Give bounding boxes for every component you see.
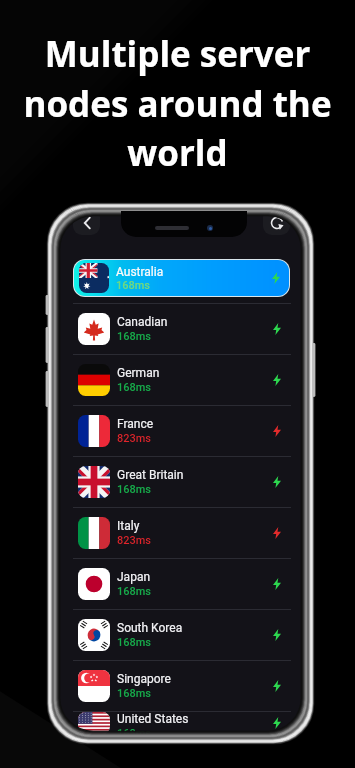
- staticText: Australia: [116, 265, 164, 279]
- staticText: 168ms: [117, 687, 152, 700]
- staticText: German: [117, 366, 160, 380]
- button[interactable]: Canadian: [60, 304, 301, 354]
- staticText: Japan: [117, 570, 151, 584]
- staticText: 168ms: [117, 330, 152, 343]
- button[interactable]: South Korea: [60, 610, 301, 660]
- staticText: United States: [117, 712, 189, 726]
- staticText: Great Britain: [117, 468, 184, 482]
- staticText: 168ms: [117, 585, 152, 598]
- button[interactable]: United States: [60, 712, 301, 734]
- staticText: 168ms: [117, 381, 152, 394]
- staticText: Multiple server nodes around the world: [11, 30, 344, 176]
- staticText: 823ms: [117, 432, 152, 445]
- button[interactable]: Italy: [60, 508, 301, 558]
- staticText: 168ms: [117, 727, 152, 734]
- staticText: South Korea: [117, 621, 183, 635]
- staticText: 168ms: [117, 636, 152, 649]
- button[interactable]: France: [60, 406, 301, 456]
- button[interactable]: Australia: [74, 260, 289, 296]
- button[interactable]: Singapore: [60, 661, 301, 711]
- button[interactable]: Great Britain: [60, 457, 301, 507]
- staticText: 168ms: [116, 279, 151, 292]
- staticText: Singapore: [117, 672, 171, 686]
- button[interactable]: German: [60, 355, 301, 405]
- staticText: Canadian: [117, 315, 168, 329]
- staticText: Italy: [117, 519, 140, 533]
- button[interactable]: Refresh: [263, 213, 290, 235]
- staticText: 823ms: [117, 534, 152, 547]
- button[interactable]: Back: [73, 213, 100, 235]
- button[interactable]: Japan: [60, 559, 301, 609]
- staticText: France: [117, 417, 154, 431]
- staticText: 168ms: [117, 483, 152, 496]
